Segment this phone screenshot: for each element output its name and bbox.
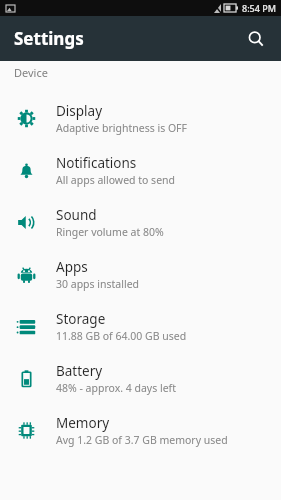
button[interactable]: Battery bbox=[0, 352, 281, 404]
button[interactable]: Sound bbox=[0, 196, 281, 248]
staticText: Device bbox=[14, 65, 48, 80]
button[interactable]: Notifications bbox=[0, 144, 281, 196]
staticText: Avg 1.2 GB of 3.7 GB memory used bbox=[56, 433, 228, 447]
staticText: Adaptive brightness is OFF bbox=[56, 121, 188, 135]
staticText: 11.88 GB of 64.00 GB used bbox=[56, 329, 187, 343]
staticText: 48% - approx. 4 days left bbox=[56, 381, 176, 395]
staticText: 30 apps installed bbox=[56, 277, 140, 291]
staticText: All apps allowed to send bbox=[56, 173, 176, 187]
button[interactable]: Search bbox=[239, 22, 273, 56]
staticText: Display bbox=[56, 102, 103, 120]
staticText: Settings bbox=[14, 27, 84, 50]
staticText: Sound bbox=[56, 206, 97, 224]
staticText: Memory bbox=[56, 414, 110, 432]
staticText: Ringer volume at 80% bbox=[56, 225, 164, 239]
staticText: Battery bbox=[56, 362, 103, 380]
button[interactable]: Memory bbox=[0, 404, 281, 456]
staticText: Apps bbox=[56, 258, 88, 276]
button[interactable]: Display bbox=[0, 92, 281, 144]
button[interactable]: Apps bbox=[0, 248, 281, 300]
button[interactable]: Storage bbox=[0, 300, 281, 352]
staticText: 8:54 PM bbox=[242, 2, 276, 14]
staticText: Notifications bbox=[56, 154, 137, 172]
staticText: Storage bbox=[56, 310, 106, 328]
